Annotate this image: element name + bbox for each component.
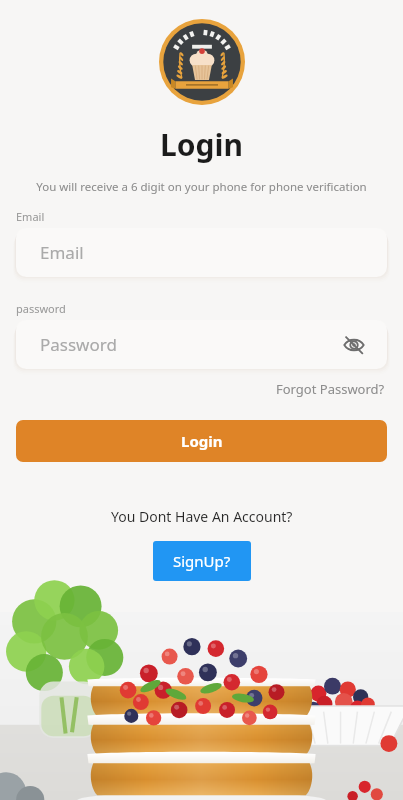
staticText: SignUp? <box>173 551 231 571</box>
staticText: Forgot Password? <box>276 380 385 398</box>
button[interactable]: Show password <box>339 330 369 360</box>
button[interactable]: SignUp? <box>153 541 251 581</box>
staticText: You will receive a 6 digit on your phone… <box>36 179 367 195</box>
staticText: Password <box>40 333 117 356</box>
staticText: Login <box>160 124 243 165</box>
staticText: Email <box>16 209 45 224</box>
staticText: password <box>16 301 66 316</box>
button[interactable]: Login <box>16 420 387 462</box>
staticText: Email <box>40 241 84 264</box>
button[interactable]: Password <box>16 320 387 369</box>
button[interactable]: Forgot Password? <box>274 378 387 400</box>
staticText: Login <box>181 431 223 451</box>
button[interactable]: Email <box>16 228 387 277</box>
staticText: You Dont Have An Account? <box>111 507 293 526</box>
